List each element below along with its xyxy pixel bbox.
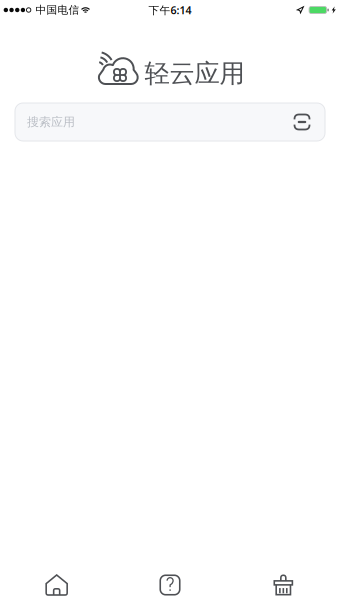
staticText: 搜索应用 — [27, 115, 75, 129]
staticText: 中国电信 — [35, 3, 79, 16]
staticText: 轻云应用 — [144, 58, 244, 89]
button[interactable]: 帮助 — [113, 562, 227, 610]
button[interactable]: 扫一扫 — [287, 107, 317, 137]
button[interactable]: 首页 — [0, 562, 113, 610]
button[interactable]: 清理 — [227, 562, 340, 610]
staticText: 下午6:14 — [148, 3, 191, 17]
